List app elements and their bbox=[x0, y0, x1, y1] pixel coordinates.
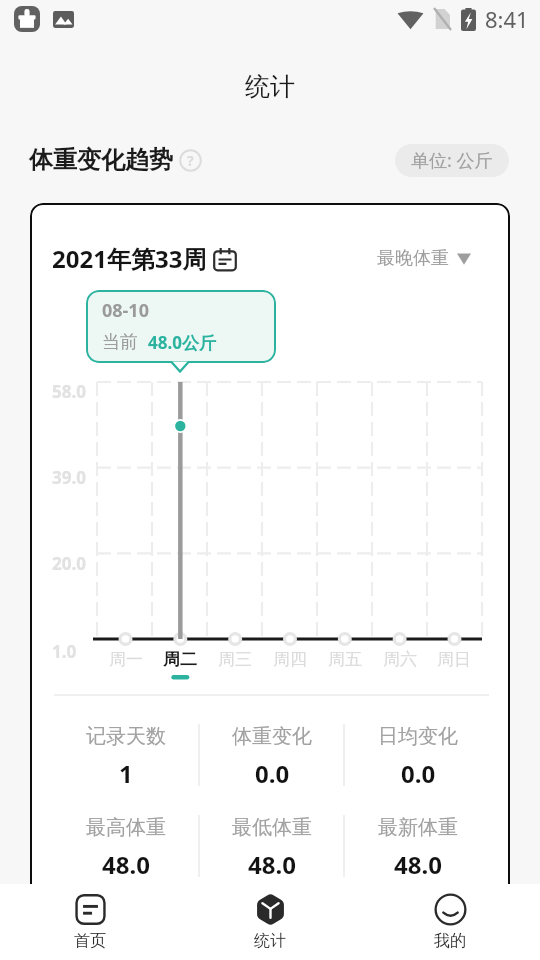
button[interactable]: 首页 bbox=[0, 884, 180, 960]
staticText: 周一 bbox=[109, 649, 143, 670]
staticText: 20.0 bbox=[52, 552, 86, 575]
staticText: ? bbox=[187, 151, 194, 170]
staticText: 日均变化 bbox=[378, 724, 458, 749]
staticText: 48.0 bbox=[102, 848, 150, 881]
staticText: 58.0 bbox=[52, 380, 86, 403]
staticText: 48.0 bbox=[248, 848, 296, 881]
staticText: 体重变化 bbox=[232, 724, 312, 749]
button[interactable]: Help bbox=[178, 148, 202, 172]
staticText: 39.0 bbox=[52, 466, 86, 489]
button[interactable]: Pick week bbox=[213, 247, 237, 271]
staticText: 周五 bbox=[328, 649, 362, 670]
staticText: 周四 bbox=[273, 649, 307, 670]
staticText: 单位: 公斤 bbox=[411, 148, 493, 173]
staticText: 1 bbox=[119, 757, 133, 790]
other: Screenshot bbox=[53, 9, 74, 30]
staticText: 周三 bbox=[218, 649, 252, 670]
staticText: 最低体重 bbox=[232, 815, 312, 840]
staticText: 最新体重 bbox=[378, 815, 458, 840]
staticText: 0.0 bbox=[255, 757, 290, 790]
staticText: 最高体重 bbox=[86, 815, 166, 840]
button[interactable]: 我的 bbox=[360, 884, 540, 960]
staticText: 首页 bbox=[74, 931, 106, 951]
other: Notification bbox=[14, 6, 40, 32]
other: Wifi bbox=[397, 9, 424, 30]
staticText: 周二 bbox=[163, 649, 197, 670]
button[interactable]: 统计 bbox=[180, 884, 360, 960]
button[interactable]: 单位: 公斤 bbox=[395, 144, 509, 177]
staticText: 体重变化趋势 bbox=[29, 145, 173, 175]
staticText: 48.0 bbox=[394, 848, 442, 881]
staticText: 周日 bbox=[437, 649, 471, 670]
staticText: 统计 bbox=[254, 931, 286, 951]
staticText: 周六 bbox=[383, 649, 417, 670]
staticText: 当前 bbox=[102, 331, 138, 354]
staticText: 我的 bbox=[434, 931, 466, 951]
staticText: 统计 bbox=[245, 71, 295, 102]
staticText: 2021年第33周 bbox=[52, 242, 207, 275]
staticText: 8:41 bbox=[485, 4, 529, 34]
staticText: 记录天数 bbox=[86, 724, 166, 749]
staticText: 08-10 bbox=[102, 298, 149, 323]
button[interactable]: 最晚体重 bbox=[377, 247, 471, 270]
staticText: 0.0 bbox=[401, 757, 436, 790]
staticText: 48.0公斤 bbox=[148, 331, 216, 354]
staticText: 1.0 bbox=[52, 640, 77, 663]
staticText: 最晚体重 bbox=[377, 247, 449, 270]
